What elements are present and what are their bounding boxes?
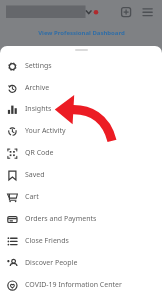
staticText: Orders and Payments: [25, 214, 97, 224]
button[interactable]: QR Code: [0, 142, 162, 164]
button[interactable]: COVID-19 Information Center: [0, 274, 162, 296]
button[interactable]: Cart: [0, 186, 162, 208]
button[interactable]: Insights: [0, 98, 162, 120]
staticText: Settings: [25, 61, 52, 71]
button[interactable]: Settings: [0, 55, 162, 77]
staticText: Saved: [25, 170, 45, 180]
button[interactable]: Switch account: [4, 3, 100, 21]
staticText: QR Code: [25, 148, 54, 158]
staticText: View Professional Dashboard: [38, 29, 125, 37]
staticText: Cart: [25, 192, 39, 202]
button[interactable]: View Professional Dashboard: [34, 28, 129, 38]
button[interactable]: Menu: [139, 3, 157, 21]
button[interactable]: Archive: [0, 77, 162, 99]
staticText: COVID-19 Information Center: [25, 280, 122, 290]
staticText: Archive: [25, 83, 50, 93]
button[interactable]: Discover People: [0, 252, 162, 274]
button[interactable]: Your Activity: [0, 120, 162, 142]
button[interactable]: Saved: [0, 164, 162, 186]
button[interactable]: New post: [117, 3, 135, 21]
staticText: Close Friends: [25, 236, 69, 246]
button[interactable]: Close Friends: [0, 230, 162, 252]
staticText: Discover People: [25, 258, 78, 268]
staticText: Your Activity: [25, 126, 66, 136]
button[interactable]: Orders and Payments: [0, 208, 162, 230]
staticText: Insights: [25, 104, 52, 114]
